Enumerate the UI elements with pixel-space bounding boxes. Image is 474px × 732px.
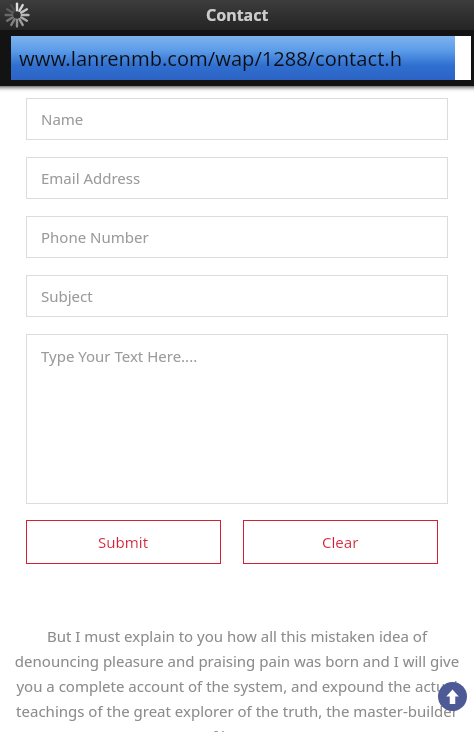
staticText: But I must explain to you how all this m…	[14, 626, 460, 732]
staticText: Contact	[206, 4, 269, 26]
button[interactable]: www.lanrenmb.com/wap/1288/contact.h	[11, 36, 471, 80]
button[interactable]: Scroll to top	[438, 682, 467, 711]
button[interactable]: Type Your Text Here....	[26, 334, 448, 504]
button[interactable]: Submit	[26, 520, 221, 564]
staticText: Clear	[322, 532, 359, 552]
staticText: Submit	[98, 532, 149, 552]
button[interactable]: Clear	[243, 520, 438, 564]
staticText: Type Your Text Here....	[41, 346, 198, 366]
button[interactable]: Name	[26, 98, 448, 140]
button[interactable]: Phone Number	[26, 216, 448, 258]
staticText: www.lanrenmb.com/wap/1288/contact.h	[19, 45, 403, 72]
staticText: Phone Number	[41, 227, 149, 247]
staticText: Subject	[41, 286, 93, 306]
staticText: Email Address	[41, 168, 141, 188]
staticText: Name	[41, 109, 84, 129]
button[interactable]: Subject	[26, 275, 448, 317]
button[interactable]: Email Address	[26, 157, 448, 199]
